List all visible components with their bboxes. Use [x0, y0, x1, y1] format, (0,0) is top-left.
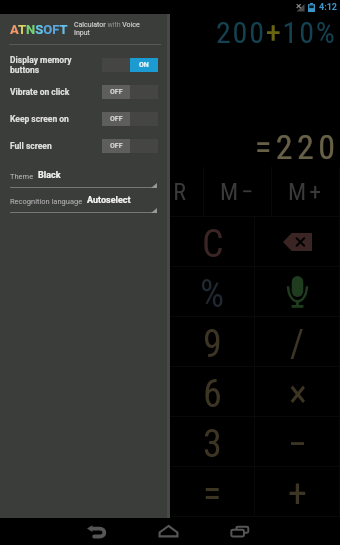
- staticText: C: [202, 222, 224, 267]
- staticText: OFF: [110, 88, 123, 96]
- staticText: MC: [15, 178, 53, 206]
- staticText: M−: [220, 178, 257, 206]
- staticText: Black: [38, 170, 61, 181]
- button[interactable]: M+: [272, 167, 340, 217]
- staticText: =: [203, 472, 222, 517]
- staticText: 4:12: [319, 2, 338, 13]
- staticText: ATNSOFT: [10, 22, 68, 37]
- staticText: Keep screen on: [10, 114, 102, 124]
- button[interactable]: Voice input: [255, 267, 340, 317]
- staticText: 6: [203, 372, 222, 417]
- button[interactable]: Vibrate on click: [0, 78, 170, 105]
- button[interactable]: 9: [170, 317, 255, 367]
- button[interactable]: Theme: [0, 165, 170, 188]
- button[interactable]: C: [170, 217, 255, 267]
- button[interactable]: M−: [204, 167, 272, 217]
- button[interactable]: MR: [136, 167, 204, 217]
- staticText: %: [200, 272, 225, 317]
- button[interactable]: Backspace: [255, 217, 340, 267]
- button[interactable]: Full screen: [0, 132, 170, 159]
- staticText: 9: [203, 322, 222, 367]
- button[interactable]: 6: [170, 367, 255, 417]
- staticText: Display memory buttons: [10, 55, 102, 75]
- button[interactable]: MS: [68, 167, 136, 217]
- staticText: Calculator with Voice Input: [74, 21, 140, 37]
- button[interactable]: =: [170, 467, 255, 517]
- staticText: /: [290, 322, 305, 367]
- button[interactable]: +: [255, 467, 340, 517]
- staticText: 3: [203, 422, 222, 467]
- button[interactable]: Back: [69, 517, 123, 545]
- button[interactable]: 3: [170, 417, 255, 467]
- staticText: MS: [84, 178, 121, 206]
- staticText: Full screen: [10, 141, 102, 151]
- staticText: =220: [255, 127, 340, 167]
- button[interactable]: −: [255, 417, 340, 467]
- staticText: +: [288, 472, 307, 517]
- staticText: ON: [139, 61, 149, 69]
- button[interactable]: Display memory buttons: [0, 51, 170, 78]
- staticText: Theme: [10, 172, 34, 181]
- button[interactable]: Recent apps: [213, 517, 267, 545]
- staticText: ×: [289, 372, 307, 417]
- button[interactable]: MC: [0, 167, 68, 217]
- button[interactable]: Home: [141, 517, 195, 545]
- staticText: −: [288, 422, 307, 467]
- staticText: MR: [152, 178, 189, 206]
- staticText: 200+10%: [216, 15, 337, 50]
- staticText: M+: [288, 178, 325, 206]
- staticText: Recognition language: [10, 197, 83, 206]
- button[interactable]: %: [170, 267, 255, 317]
- button[interactable]: Keep screen on: [0, 105, 170, 132]
- staticText: OFF: [110, 115, 123, 123]
- staticText: Autoselect: [87, 195, 131, 206]
- button[interactable]: ×: [255, 367, 340, 417]
- button[interactable]: /: [255, 317, 340, 367]
- staticText: OFF: [110, 142, 123, 150]
- staticText: Vibrate on click: [10, 87, 102, 97]
- button[interactable]: Recognition language: [0, 190, 170, 213]
